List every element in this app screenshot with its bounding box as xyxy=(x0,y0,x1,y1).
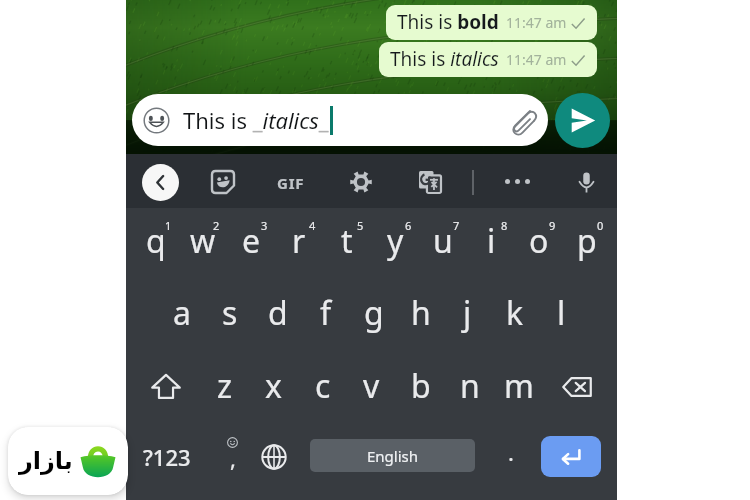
staticText: This is _italics_ xyxy=(183,105,329,135)
staticText: m xyxy=(504,364,534,408)
button[interactable]: Shift xyxy=(132,352,200,422)
staticText: 11:47 am xyxy=(506,13,567,32)
staticText: y xyxy=(387,219,404,263)
staticText: v xyxy=(363,364,380,408)
button[interactable]: m xyxy=(494,352,543,422)
button[interactable]: z xyxy=(200,352,249,422)
staticText: r xyxy=(292,219,306,263)
staticText: p xyxy=(577,219,597,263)
button[interactable]: Change language xyxy=(253,434,295,480)
staticText: , xyxy=(230,443,236,473)
button[interactable]: f xyxy=(302,282,350,352)
staticText: 11:47 am xyxy=(506,50,567,69)
button[interactable]: Enter xyxy=(541,436,601,477)
button[interactable]: Bazaar xyxy=(8,427,128,495)
button[interactable]: o xyxy=(515,208,563,282)
staticText: 8 xyxy=(501,218,508,233)
staticText: x xyxy=(265,364,282,408)
button[interactable]: s xyxy=(206,282,254,352)
button[interactable]: p xyxy=(563,208,611,282)
button[interactable]: English xyxy=(310,439,475,472)
button[interactable]: Back xyxy=(142,164,179,201)
button[interactable]: Settings xyxy=(350,171,372,193)
staticText: t xyxy=(341,219,353,263)
staticText: o xyxy=(529,219,549,263)
button[interactable]: q xyxy=(132,208,179,282)
button[interactable]: c xyxy=(298,352,347,422)
staticText: s xyxy=(222,291,238,335)
staticText: j xyxy=(463,291,472,335)
button[interactable]: w xyxy=(179,208,227,282)
staticText: n xyxy=(460,364,480,408)
other: Emoji xyxy=(143,107,170,134)
staticText: 5 xyxy=(357,218,364,233)
staticText: q xyxy=(146,219,166,263)
staticText: 4 xyxy=(309,218,316,233)
button[interactable]: ?123 xyxy=(138,434,196,480)
staticText: بازار xyxy=(19,447,73,475)
staticText: g xyxy=(364,291,384,335)
button[interactable]: l xyxy=(538,282,585,352)
button[interactable]: Translate xyxy=(419,171,441,193)
staticText: a xyxy=(173,291,191,335)
button[interactable]: Voice input xyxy=(574,170,599,195)
staticText: 7 xyxy=(453,218,460,233)
staticText: 1 xyxy=(165,218,172,233)
staticText: w xyxy=(190,219,216,263)
staticText: d xyxy=(268,291,288,335)
staticText: z xyxy=(217,364,233,408)
button[interactable]: v xyxy=(347,352,396,422)
button[interactable]: i xyxy=(467,208,515,282)
staticText: 6 xyxy=(405,218,412,233)
button[interactable]: r xyxy=(275,208,323,282)
staticText: b xyxy=(411,364,431,408)
staticText: l xyxy=(557,291,566,335)
staticText: ?123 xyxy=(143,442,191,472)
button[interactable]: Send xyxy=(555,93,610,148)
button[interactable]: k xyxy=(491,282,538,352)
button[interactable]: Backspace xyxy=(543,352,611,422)
button[interactable]: e xyxy=(227,208,275,282)
staticText: h xyxy=(411,291,431,335)
button[interactable]: d xyxy=(254,282,302,352)
button[interactable]: n xyxy=(445,352,494,422)
staticText: 9 xyxy=(549,218,556,233)
button[interactable]: h xyxy=(397,282,444,352)
staticText: e xyxy=(242,219,261,263)
button[interactable]: , xyxy=(212,434,252,480)
button[interactable]: Emoji xyxy=(132,94,548,146)
button[interactable]: x xyxy=(249,352,298,422)
button[interactable]: b xyxy=(396,352,445,422)
button[interactable]: . xyxy=(491,434,531,480)
button[interactable]: Stickers xyxy=(212,171,234,193)
staticText: English xyxy=(367,446,419,466)
staticText: This is bold xyxy=(397,9,499,35)
button[interactable]: Attach file xyxy=(506,105,536,135)
button[interactable]: j xyxy=(444,282,491,352)
staticText: . xyxy=(508,437,514,467)
button[interactable]: More options xyxy=(505,179,530,184)
staticText: i xyxy=(487,219,496,263)
staticText: 3 xyxy=(261,218,268,233)
button[interactable]: u xyxy=(419,208,467,282)
staticText: This is italics xyxy=(390,46,499,72)
staticText: u xyxy=(433,219,453,263)
staticText: 2 xyxy=(213,218,220,233)
button[interactable]: GIF xyxy=(274,172,308,194)
staticText: 0 xyxy=(597,218,604,233)
staticText: k xyxy=(506,291,524,335)
button[interactable]: g xyxy=(350,282,397,352)
button[interactable]: a xyxy=(158,282,206,352)
staticText: f xyxy=(320,291,332,335)
button[interactable]: t xyxy=(323,208,371,282)
button[interactable]: y xyxy=(371,208,419,282)
staticText: c xyxy=(315,364,331,408)
staticText: GIF xyxy=(277,173,305,193)
